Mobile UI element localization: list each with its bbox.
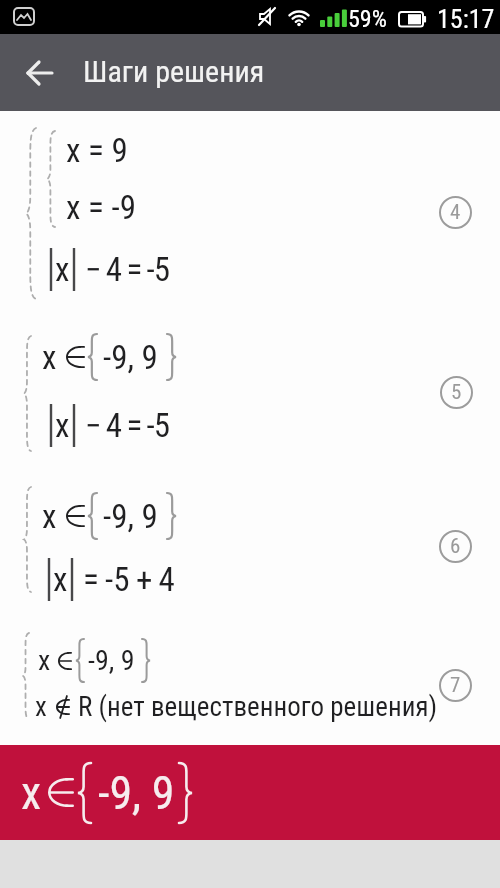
staticText: 15:17: [437, 4, 495, 34]
staticText: x: [55, 406, 70, 445]
staticText: − 4 = -5: [85, 406, 169, 445]
staticText: 5: [451, 380, 462, 405]
staticText: 59%: [348, 5, 387, 33]
staticText: x = -9: [66, 188, 136, 227]
staticText: x: [42, 497, 57, 536]
staticText: 4: [450, 200, 461, 225]
staticText: − 4 = -5: [85, 250, 169, 289]
button[interactable]: x: [0, 745, 500, 840]
staticText: x: [21, 766, 42, 820]
staticText: 6: [450, 534, 461, 559]
staticText: x = 9: [66, 131, 128, 170]
staticText: -9, 9: [98, 766, 175, 820]
button[interactable]: 6: [439, 530, 472, 563]
staticText: -9, 9: [88, 644, 135, 677]
staticText: -9, 9: [103, 338, 158, 377]
staticText: R (нет вещественного решения): [78, 691, 438, 723]
staticText: x: [42, 338, 57, 377]
staticText: x: [55, 250, 70, 289]
staticText: -9, 9: [103, 497, 158, 536]
staticText: x: [35, 691, 47, 723]
button[interactable]: 7: [439, 669, 472, 702]
staticText: 7: [450, 673, 461, 698]
button[interactable]: 5: [440, 376, 473, 409]
staticText: Шаги решения: [83, 54, 265, 89]
staticText: x: [53, 560, 68, 599]
staticText: x: [38, 644, 51, 677]
button[interactable]: 4: [439, 196, 472, 229]
staticText: = -5 + 4: [83, 560, 175, 599]
button[interactable]: [14, 49, 66, 97]
